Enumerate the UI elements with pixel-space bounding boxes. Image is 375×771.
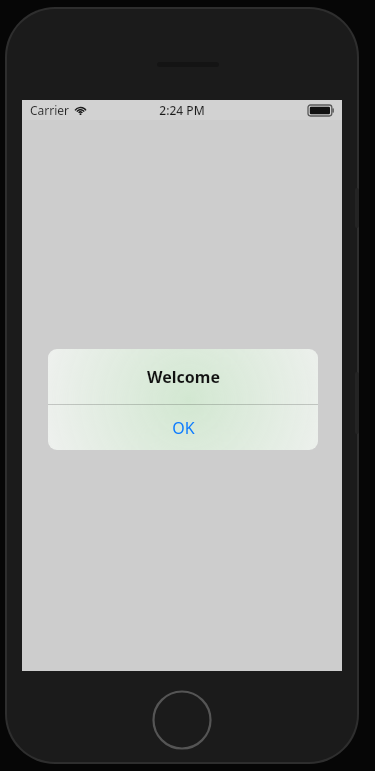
button[interactable]: Home (152, 690, 212, 750)
staticText: OK (172, 417, 195, 439)
staticText: Welcome (147, 366, 220, 388)
staticText: Carrier (30, 102, 70, 118)
button[interactable]: OK (48, 405, 318, 450)
staticText: 2:24 PM (159, 102, 205, 118)
